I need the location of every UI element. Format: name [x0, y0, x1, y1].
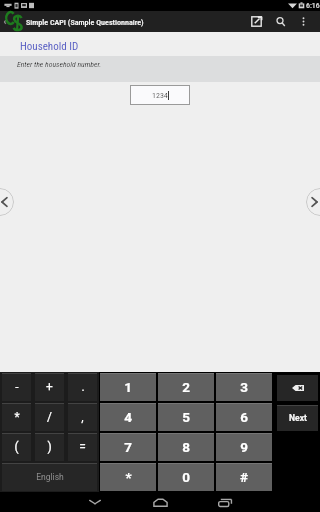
staticText: +: [46, 380, 53, 394]
staticText: *: [14, 410, 20, 424]
button[interactable]: 4: [100, 403, 156, 431]
staticText: .: [81, 380, 85, 394]
staticText: -: [15, 380, 19, 394]
button[interactable]: Home: [150, 492, 170, 512]
button[interactable]: 3: [216, 373, 272, 401]
button[interactable]: *: [100, 463, 156, 491]
staticText: 7: [124, 439, 132, 455]
button[interactable]: ): [35, 433, 64, 461]
button[interactable]: +: [35, 373, 64, 401]
button[interactable]: 5: [158, 403, 214, 431]
staticText: *: [125, 469, 132, 485]
staticText: #: [240, 469, 248, 485]
staticText: 8: [182, 439, 190, 455]
staticText: 1: [124, 379, 132, 395]
staticText: 9: [240, 439, 248, 455]
staticText: =: [79, 440, 86, 454]
staticText: 1234: [152, 91, 168, 100]
button[interactable]: Next: [306, 188, 320, 216]
staticText: 0: [182, 469, 190, 485]
staticText: Household ID: [20, 40, 79, 53]
button[interactable]: English: [2, 463, 97, 491]
staticText: 5: [182, 409, 190, 425]
button[interactable]: *: [2, 403, 31, 431]
staticText: English: [36, 472, 64, 482]
button[interactable]: 1: [100, 373, 156, 401]
staticText: 6: [240, 409, 248, 425]
button[interactable]: Backspace: [277, 375, 318, 401]
button[interactable]: 7: [100, 433, 156, 461]
button[interactable]: Recents: [215, 492, 235, 512]
button[interactable]: #: [216, 463, 272, 491]
staticText: ): [47, 440, 52, 454]
staticText: /: [47, 410, 52, 424]
button[interactable]: =: [68, 433, 97, 461]
staticText: (: [14, 440, 19, 454]
button[interactable]: 8: [158, 433, 214, 461]
staticText: 4: [124, 409, 132, 425]
staticText: Simple CAPI (Sample Questionnaire): [26, 17, 144, 26]
staticText: 2: [182, 379, 190, 395]
button[interactable]: ,: [68, 403, 97, 431]
staticText: 3: [240, 379, 248, 395]
staticText: ,: [81, 410, 84, 424]
button[interactable]: .: [68, 373, 97, 401]
button[interactable]: /: [35, 403, 64, 431]
staticText: Enter the household number.: [17, 60, 102, 69]
button[interactable]: 2: [158, 373, 214, 401]
button[interactable]: 1234: [130, 85, 190, 105]
button[interactable]: More options: [293, 11, 313, 32]
button[interactable]: Previous: [0, 188, 14, 216]
button[interactable]: 9: [216, 433, 272, 461]
button[interactable]: Back: [0, 11, 9, 32]
staticText: Next: [289, 413, 307, 423]
button[interactable]: -: [2, 373, 31, 401]
button[interactable]: Hide keyboard: [85, 492, 105, 512]
button[interactable]: Search: [269, 11, 293, 32]
button[interactable]: 0: [158, 463, 214, 491]
button[interactable]: Next: [277, 405, 318, 431]
button[interactable]: 6: [216, 403, 272, 431]
button[interactable]: (: [2, 433, 31, 461]
staticText: 6:16: [306, 1, 320, 10]
button[interactable]: Edit: [243, 11, 269, 32]
